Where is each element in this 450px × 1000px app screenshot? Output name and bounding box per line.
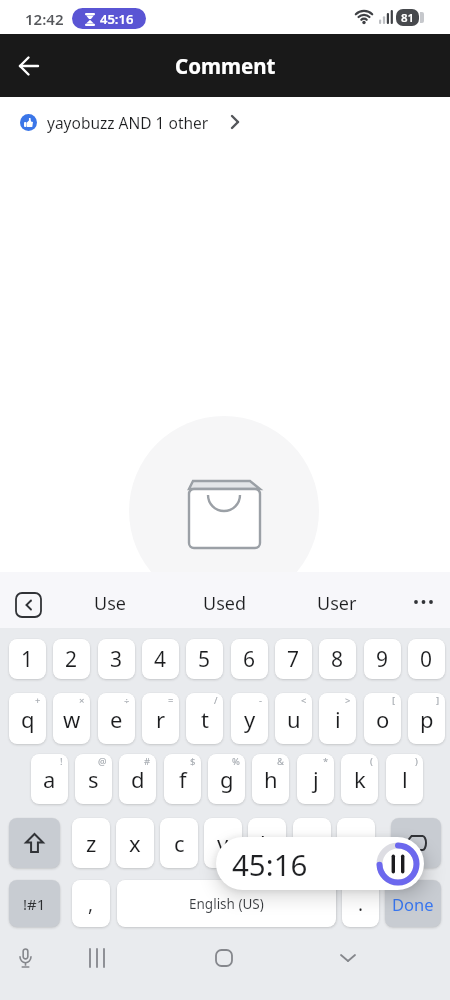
staticText: a — [43, 764, 56, 794]
button[interactable]: English (US) — [117, 880, 336, 927]
button[interactable] — [391, 818, 441, 868]
staticText: . — [358, 891, 364, 917]
staticText: * — [323, 755, 329, 768]
staticText: ( — [370, 755, 373, 768]
staticText: q — [21, 704, 35, 734]
staticText: ) — [415, 755, 418, 768]
button[interactable] — [10, 943, 40, 973]
button[interactable] — [15, 592, 42, 618]
button[interactable]: 7 — [275, 639, 312, 679]
staticText: k — [354, 764, 366, 794]
staticText: y — [244, 704, 256, 734]
staticText: ] — [436, 694, 440, 707]
staticText: i — [335, 704, 341, 734]
button[interactable] — [209, 943, 239, 973]
button[interactable]: t — [186, 693, 223, 744]
button[interactable]: q — [9, 693, 46, 744]
staticText: 12:42 — [25, 9, 64, 29]
button[interactable]: j — [297, 754, 334, 804]
button[interactable]: 4 — [142, 639, 179, 679]
button[interactable]: p — [408, 693, 445, 744]
staticText: % — [232, 755, 240, 768]
staticText: u — [287, 704, 301, 734]
button[interactable]: u — [275, 693, 312, 744]
button[interactable] — [9, 818, 60, 868]
button[interactable]: k — [341, 754, 378, 804]
staticText: yayobuzz AND 1 other — [47, 112, 209, 133]
staticText: c — [174, 828, 185, 858]
button[interactable] — [8, 45, 50, 87]
button[interactable]: 2 — [53, 639, 90, 679]
button[interactable]: l — [386, 754, 423, 804]
staticText: [ — [392, 694, 396, 707]
staticText: p — [420, 704, 434, 734]
button[interactable]: 1 — [9, 639, 46, 679]
button[interactable]: b — [248, 818, 286, 868]
staticText: / — [214, 694, 218, 707]
button[interactable]: w — [53, 693, 90, 744]
button[interactable]: r — [142, 693, 179, 744]
button[interactable]: g — [208, 754, 245, 804]
staticText: User — [317, 591, 357, 616]
button[interactable]: 45:16 — [216, 837, 424, 890]
button[interactable]: . — [342, 880, 379, 927]
button[interactable]: 8 — [319, 639, 356, 679]
button[interactable]: n — [293, 818, 331, 868]
staticText: 3 — [110, 645, 123, 674]
staticText: @ — [98, 755, 107, 768]
staticText: l — [402, 764, 408, 794]
staticText: ÷ — [124, 694, 130, 707]
staticText: Use — [94, 591, 126, 616]
button[interactable]: 9 — [364, 639, 401, 679]
button[interactable]: 0 — [408, 639, 445, 679]
staticText: 8 — [331, 645, 344, 674]
button[interactable]: a — [31, 754, 68, 804]
button[interactable]: !#1 — [9, 880, 60, 927]
staticText: Done — [392, 893, 434, 915]
staticText: d — [131, 764, 145, 794]
button[interactable]: User — [292, 589, 382, 617]
button[interactable]: m — [337, 818, 375, 868]
button[interactable]: Use — [65, 589, 155, 617]
button[interactable]: h — [252, 754, 289, 804]
staticText: b — [260, 828, 274, 858]
staticText: 1 — [21, 645, 34, 674]
button[interactable]: z — [72, 818, 110, 868]
staticText: 5 — [198, 645, 211, 674]
button[interactable]: 5 — [186, 639, 223, 679]
button[interactable] — [333, 943, 363, 973]
button[interactable]: d — [119, 754, 156, 804]
button[interactable]: 6 — [231, 639, 268, 679]
button[interactable]: i — [319, 693, 356, 744]
button[interactable]: x — [116, 818, 154, 868]
staticText: x — [129, 828, 141, 858]
staticText: Used — [203, 591, 247, 616]
button[interactable]: o — [364, 693, 401, 744]
button[interactable]: v — [204, 818, 242, 868]
staticText: r — [156, 704, 166, 734]
button[interactable]: y — [231, 693, 268, 744]
staticText: 9 — [376, 645, 389, 674]
staticText: > — [345, 694, 351, 707]
button[interactable]: f — [164, 754, 201, 804]
button[interactable]: yayobuzz AND 1 other — [0, 104, 450, 140]
staticText: j — [313, 764, 319, 794]
staticText: n — [305, 828, 319, 858]
staticText: $ — [190, 755, 196, 768]
staticText: - — [259, 694, 263, 707]
button[interactable]: s — [75, 754, 112, 804]
button[interactable]: 3 — [98, 639, 135, 679]
staticText: # — [144, 755, 151, 768]
button[interactable]: c — [160, 818, 198, 868]
staticText: v — [217, 828, 229, 858]
staticText: 7 — [287, 645, 300, 674]
button[interactable]: e — [98, 693, 135, 744]
button[interactable]: Done — [385, 880, 441, 927]
button[interactable]: , — [72, 880, 110, 927]
button[interactable] — [82, 943, 112, 973]
button[interactable] — [408, 587, 438, 617]
button[interactable]: Used — [180, 589, 270, 617]
staticText: 0 — [420, 645, 433, 674]
staticText: m — [346, 828, 367, 858]
staticText: t — [201, 704, 209, 734]
